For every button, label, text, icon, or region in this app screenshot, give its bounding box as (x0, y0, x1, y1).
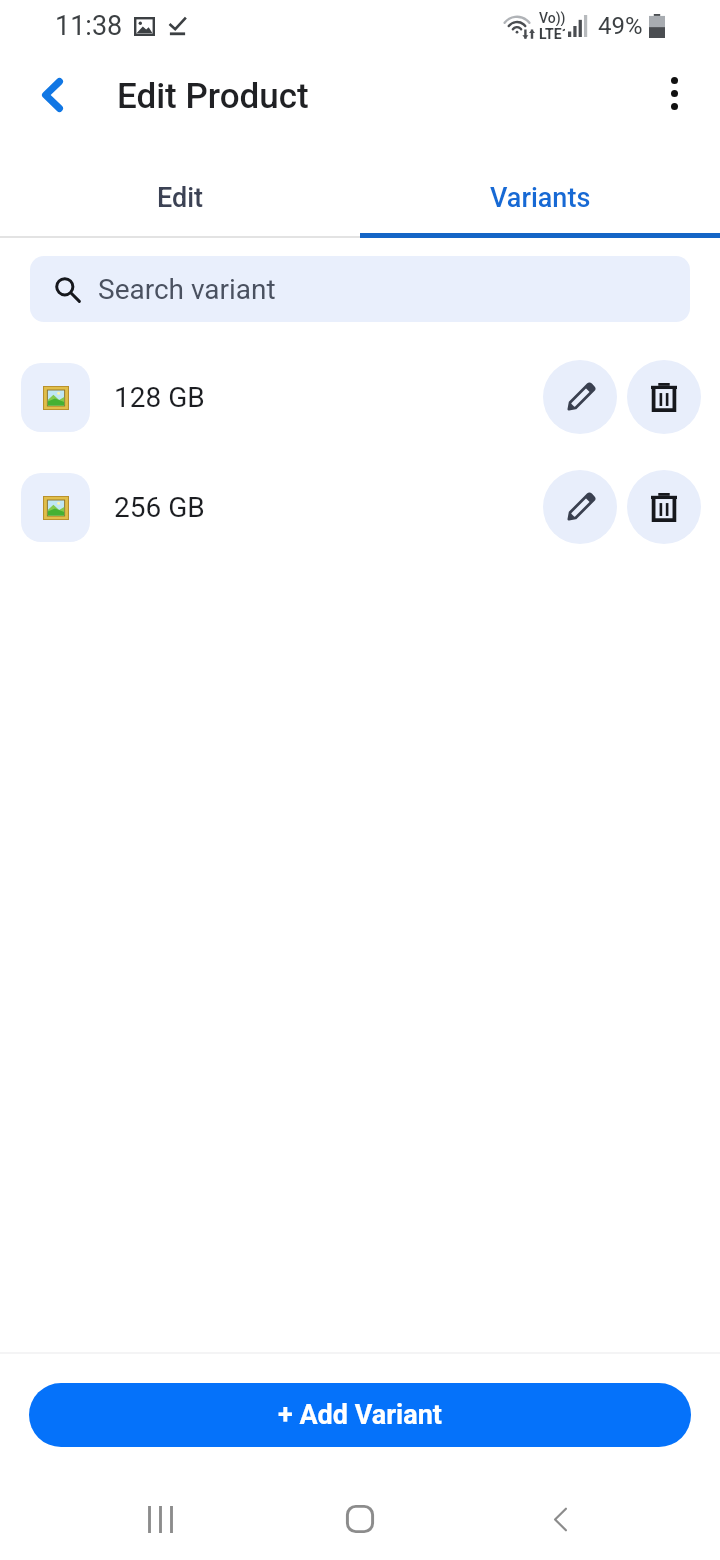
staticText: Variants (490, 182, 591, 214)
staticText: Edit Product (117, 76, 309, 117)
button[interactable]: Variants (360, 158, 720, 238)
button[interactable]: Back (460, 1478, 660, 1560)
button[interactable]: More options (644, 63, 704, 123)
button[interactable]: + Add Variant (29, 1383, 691, 1447)
staticText: LTE1 (539, 26, 565, 42)
button[interactable]: Edit variant (543, 470, 617, 544)
button[interactable]: Home (260, 1478, 460, 1560)
staticText: 49% (598, 12, 643, 40)
staticText: + Add Variant (278, 1399, 442, 1431)
staticText: 128 GB (114, 381, 205, 414)
button[interactable]: Recent apps (60, 1478, 260, 1560)
button[interactable]: Back (22, 65, 82, 125)
button[interactable]: Search variant (30, 256, 690, 322)
staticText: 11:38 (55, 10, 123, 42)
button[interactable]: 256 GB (0, 451, 720, 563)
button[interactable]: Edit (0, 158, 360, 238)
staticText: Search variant (98, 273, 276, 306)
staticText: Vo)) (539, 10, 565, 26)
button[interactable]: 128 GB (0, 341, 720, 453)
button[interactable]: Delete variant (627, 470, 701, 544)
button[interactable]: Delete variant (627, 360, 701, 434)
staticText: 256 GB (114, 491, 205, 524)
staticText: Edit (157, 182, 204, 214)
button[interactable]: Edit variant (543, 360, 617, 434)
